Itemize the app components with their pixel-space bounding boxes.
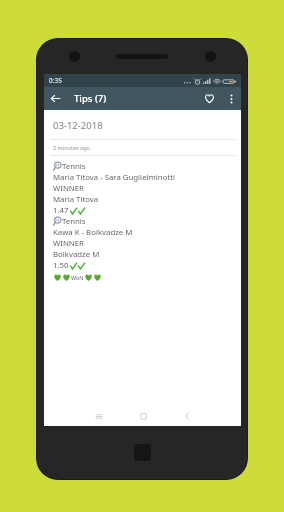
staticText: 1.50 <box>53 260 69 271</box>
staticText: Tennis <box>62 161 86 172</box>
staticText: 03-12-2018 <box>53 119 103 132</box>
staticText: Bolkvadze M <box>53 249 100 260</box>
staticText: Maria Titova <box>53 194 99 205</box>
staticText: Tennis <box>62 216 86 227</box>
button[interactable]: Back <box>44 87 67 110</box>
button[interactable]: Back <box>165 406 209 426</box>
staticText: 2 minutes ago <box>53 144 90 151</box>
staticText: Tips (7) <box>74 92 107 105</box>
staticText: WINNER <box>53 183 84 194</box>
staticText: Maria Titova - Sara Guglielminotti <box>53 172 176 183</box>
staticText: WoN <box>71 274 84 281</box>
button[interactable]: Home <box>121 406 165 426</box>
staticText: 1.47 <box>53 205 69 216</box>
staticText: Kawa K - Bolkvadze M <box>53 227 133 238</box>
staticText: 0:35 <box>49 76 62 85</box>
button[interactable]: Recent apps <box>77 406 121 426</box>
staticText: WINNER <box>53 238 84 249</box>
button[interactable]: More options <box>221 89 241 109</box>
button[interactable]: Favorite <box>198 87 221 110</box>
